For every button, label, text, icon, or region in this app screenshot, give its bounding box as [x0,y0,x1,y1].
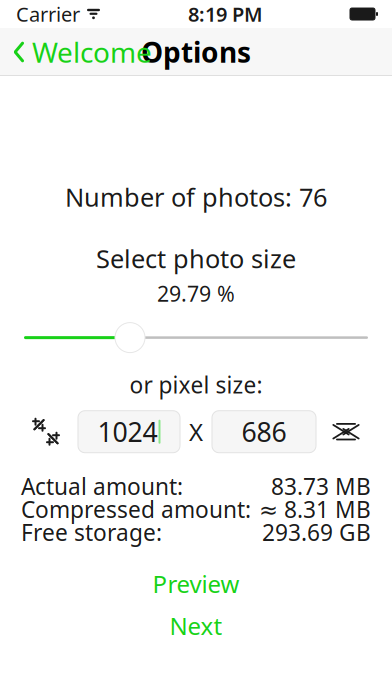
button[interactable]: Next [96,611,296,641]
staticText: Compressed amount: [21,494,251,524]
staticText: 29.79 % [157,279,235,308]
staticText: or pixel size: [129,370,262,400]
staticText: 1024 [97,414,157,449]
staticText: Select photo size [96,242,296,275]
button[interactable]: Preview [96,569,296,599]
staticText: 8:19 PM [188,1,263,27]
staticText: Carrier [16,1,80,27]
staticText: Actual amount: [21,471,183,501]
button[interactable]: Welcome [0,27,162,77]
button[interactable]: Favorite size [324,412,368,452]
staticText: ≈ 8.31 MB [259,494,371,524]
staticText: 83.73 MB [271,471,371,501]
staticText: Next [169,610,222,642]
button[interactable]: Fit to screen size [24,412,68,452]
staticText: Welcome [32,33,152,71]
staticText: Free storage: [21,517,162,547]
staticText: 293.69 GB [262,517,371,547]
staticText: Options [141,33,251,71]
staticText: Preview [152,568,239,600]
staticText: X [189,416,203,448]
staticText: 686 [241,414,286,449]
staticText: Number of photos: 76 [65,180,327,214]
